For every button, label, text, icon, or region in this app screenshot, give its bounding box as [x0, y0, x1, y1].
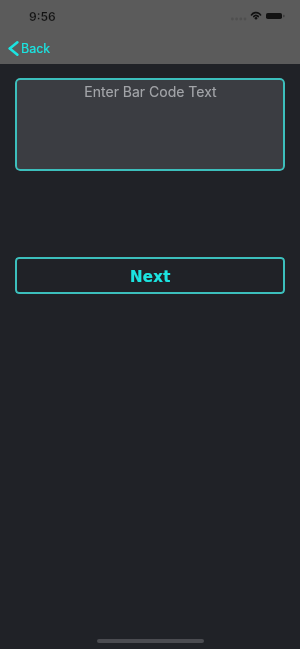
staticText: 9:56 — [29, 9, 56, 24]
other: Wi-Fi — [250, 10, 262, 20]
staticText: Back — [21, 41, 51, 56]
other: Battery — [266, 13, 285, 19]
staticText: Next — [130, 268, 171, 285]
other: Cellular signal — [231, 16, 246, 22]
button[interactable]: Back — [0, 35, 61, 61]
button[interactable]: Next — [15, 257, 285, 294]
button[interactable]: Bar code text field — [15, 78, 285, 171]
staticText: Enter Bar Code Text — [84, 83, 217, 100]
